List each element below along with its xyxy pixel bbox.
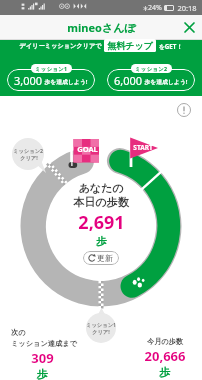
staticText: 歩 [96,235,107,248]
button[interactable]: Close [177,15,202,40]
staticText: 309 [11,349,74,367]
staticText: GOAL [77,144,98,154]
staticText: 今月の歩数 [125,337,202,346]
staticText: ミッション1 [35,65,68,72]
staticText: 6,000 [114,73,143,88]
button[interactable]: Info [177,103,191,117]
staticText: あなたの [78,181,124,195]
staticText: 次の [11,328,26,337]
staticText: ミッション1 [86,321,116,328]
staticText: デイリーミッションクリアで [19,42,102,50]
staticText: をGET！ [158,42,183,50]
staticText: 20:18 [177,3,197,13]
staticText: 無料チップ [107,40,153,51]
button[interactable]: 3,000 [7,69,95,91]
staticText: 歩を達成しよう! [43,78,88,86]
staticText: START [133,143,153,152]
staticText: 2,691 [78,210,125,235]
button[interactable]: 6,000 [107,69,195,91]
staticText: 20,666 [125,347,202,365]
staticText: 本日の歩数 [73,195,129,209]
staticText: mineoさんぽ [67,20,136,35]
staticText: 24% [148,3,162,13]
button[interactable]: 更新 [88,253,113,263]
staticText: 歩 [11,367,74,380]
staticText: 歩を達成しよう! [143,78,188,86]
staticText: クリア! [20,154,38,161]
staticText: 3,000 [14,73,43,88]
staticText: ミッション達成まで [11,339,77,348]
staticText: ミッション2 [13,147,44,154]
staticText: クリア! [92,328,110,335]
staticText: 歩 [125,365,202,379]
staticText: 更新 [97,253,113,263]
staticText: ミッション2 [135,65,168,72]
